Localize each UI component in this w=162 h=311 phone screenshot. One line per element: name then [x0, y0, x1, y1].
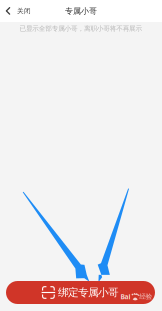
staticText: 已显示全部专属小哥，离职小哥将不再展示 [19, 24, 142, 33]
button[interactable]: 绑定专属小哥 [6, 281, 155, 304]
staticText: 专属小哥 [65, 6, 97, 16]
staticText: 绑定专属小哥 [58, 286, 119, 299]
button[interactable]: 关闭 [0, 0, 37, 22]
staticText: 经验 [139, 292, 152, 301]
staticText: 关闭 [17, 7, 31, 15]
staticText: Bai [121, 292, 131, 301]
